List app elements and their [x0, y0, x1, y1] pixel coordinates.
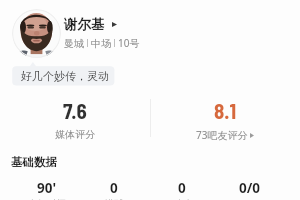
button[interactable]: Player photo — [12, 9, 61, 58]
button[interactable]: 7.6 — [0, 98, 150, 141]
staticText: 7.6 — [63, 98, 87, 123]
staticText: 0 — [110, 179, 118, 197]
button[interactable]: 好几个妙传，灵动 — [21, 69, 109, 83]
staticText: 0 — [178, 179, 186, 197]
staticText: 90' — [37, 179, 57, 197]
staticText: 73吧友评分 — [196, 128, 248, 142]
button[interactable]: 0/0 — [216, 179, 284, 200]
staticText: 谢尔基 — [64, 16, 105, 33]
staticText: 8.1 — [214, 98, 237, 123]
staticText: 10号 — [118, 36, 140, 50]
button[interactable]: 90' — [13, 179, 80, 200]
staticText: 0/0 — [239, 179, 261, 197]
staticText: 出场时间 — [28, 198, 66, 200]
staticText: 基础数据 — [11, 155, 57, 169]
staticText: 媒体评分 — [55, 128, 95, 141]
button[interactable]: 8.1 — [150, 98, 300, 142]
staticText: 曼城 — [64, 37, 84, 50]
staticText: 助攻 — [173, 198, 192, 200]
button[interactable]: 0 — [148, 179, 216, 200]
staticText: 进球 — [105, 198, 124, 200]
button[interactable]: 谢尔基 — [64, 16, 117, 33]
staticText: 中场 — [91, 37, 111, 50]
button[interactable]: 0 — [80, 179, 148, 200]
